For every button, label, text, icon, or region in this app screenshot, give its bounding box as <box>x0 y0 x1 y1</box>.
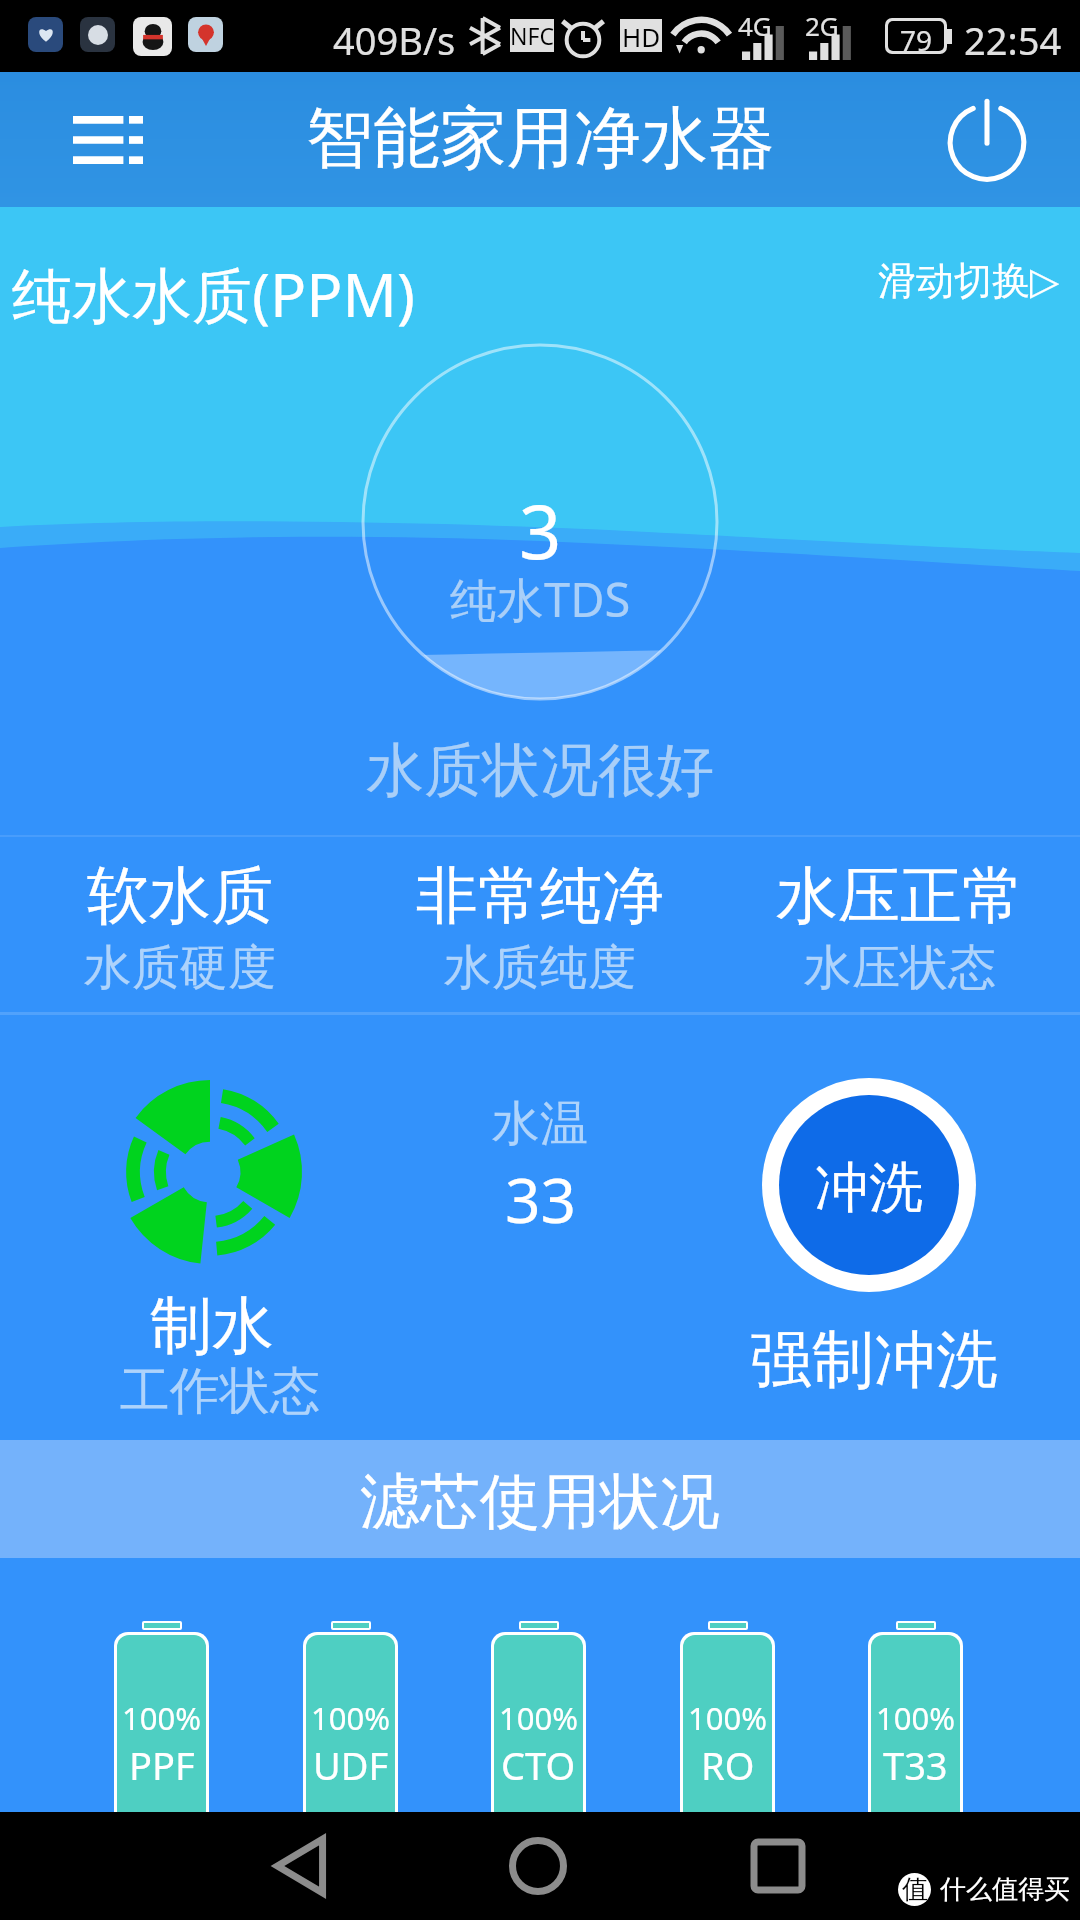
staticText: 33 <box>505 1157 576 1241</box>
staticText: 滤芯使用状况 <box>360 1464 720 1540</box>
staticText: 水压状态 <box>804 938 996 998</box>
staticText: 水压正常 <box>776 857 1024 935</box>
staticText: 工作状态 <box>120 1360 320 1423</box>
button[interactable]: Back <box>250 1816 350 1916</box>
staticText: CTO <box>501 1739 576 1791</box>
staticText: 100% <box>688 1697 767 1739</box>
staticText: NFC <box>510 20 554 51</box>
button[interactable]: 100% <box>680 1621 775 1852</box>
staticText: 4G <box>738 8 772 43</box>
staticText: 纯水TDS <box>450 567 631 631</box>
staticText: 79 <box>900 21 933 51</box>
button[interactable]: 100% <box>303 1621 398 1852</box>
staticText: 什么值得买 <box>940 1873 1070 1906</box>
staticText: 非常纯净 <box>416 857 664 935</box>
staticText: 100% <box>499 1697 578 1739</box>
button[interactable]: 制水 <box>0 1015 420 1440</box>
button[interactable]: 非常纯净 <box>360 857 720 998</box>
staticText: 制水 <box>150 1287 274 1365</box>
button[interactable]: 冲洗 <box>660 1015 1080 1440</box>
staticText: PPF <box>129 1739 195 1791</box>
staticText: 水质状况很好 <box>366 734 714 807</box>
staticText: 软水质 <box>87 857 273 935</box>
staticText: 水质纯度 <box>444 938 636 998</box>
button[interactable]: Menu <box>48 80 168 200</box>
staticText: 值 <box>902 1873 928 1906</box>
staticText: 滑动切换▷ <box>878 257 1060 305</box>
button[interactable]: Recents <box>728 1816 828 1916</box>
button[interactable]: 滑动切换▷ <box>870 245 1068 317</box>
staticText: T33 <box>883 1739 948 1791</box>
staticText: 100% <box>876 1697 955 1739</box>
staticText: RO <box>701 1739 755 1791</box>
staticText: 纯水水质(PPM) <box>12 253 416 335</box>
button[interactable]: Power <box>932 85 1042 195</box>
staticText: 3 <box>519 480 562 581</box>
staticText: 水质硬度 <box>84 938 276 998</box>
staticText: 水温 <box>492 1094 588 1154</box>
staticText: 22:54 <box>964 14 1062 66</box>
staticText: HD <box>622 19 661 52</box>
staticText: 100% <box>122 1697 201 1739</box>
staticText: 2G <box>805 8 839 43</box>
button[interactable]: 软水质 <box>0 857 360 998</box>
staticText: 100% <box>311 1697 390 1739</box>
button[interactable]: 100% <box>491 1621 586 1852</box>
button[interactable]: Home <box>488 1816 588 1916</box>
staticText: UDF <box>313 1739 389 1791</box>
staticText: 强制冲洗 <box>750 1321 998 1399</box>
staticText: 冲洗 <box>815 1154 923 1222</box>
button[interactable]: 100% <box>868 1621 963 1852</box>
staticText: 409B/s <box>333 14 456 66</box>
staticText: 智能家用净水器 <box>306 96 775 180</box>
button[interactable]: 水压正常 <box>720 857 1080 998</box>
button[interactable]: 100% <box>114 1621 209 1852</box>
